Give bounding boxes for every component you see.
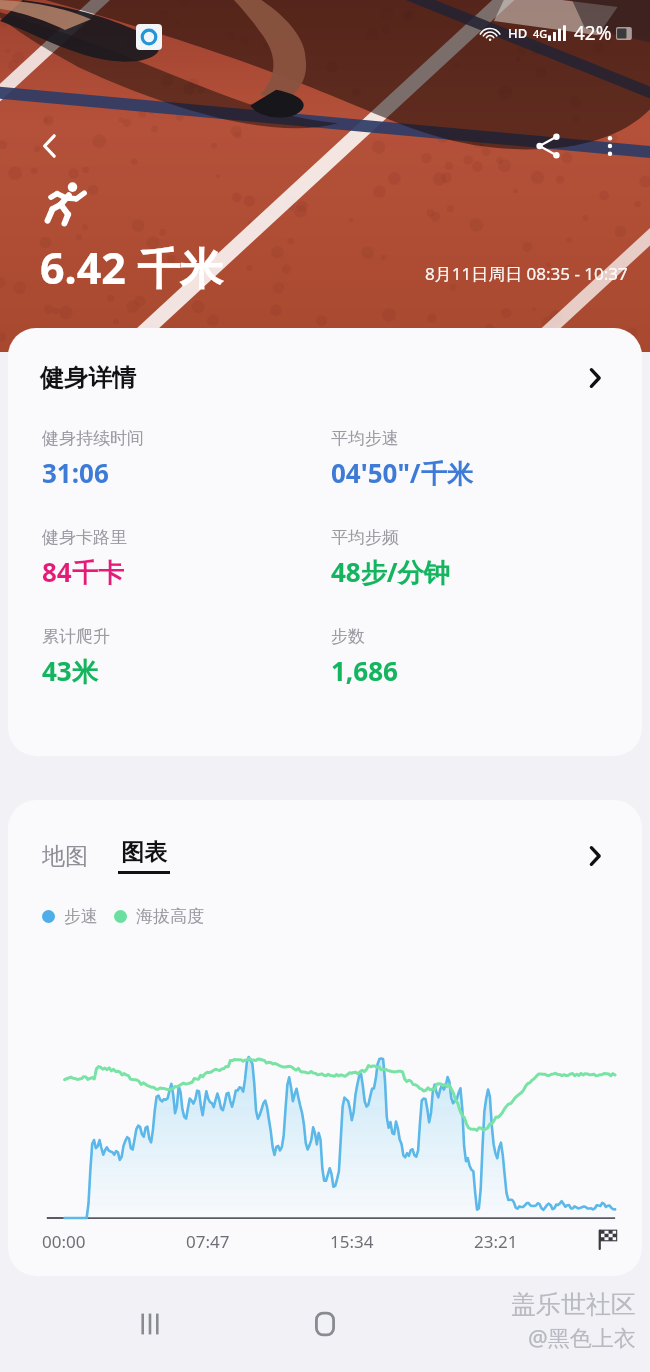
staticText: @黑色上衣 [528, 1322, 636, 1352]
staticText: 地图 [42, 842, 88, 871]
staticText: 健身详情 [40, 363, 578, 393]
button[interactable]: 地图 [38, 842, 92, 871]
staticText: 6.42 千米 [40, 238, 224, 297]
staticText: 步速 [64, 906, 98, 927]
staticText: 48步/分钟 [331, 554, 450, 590]
button[interactable]: More options [582, 118, 638, 174]
staticText: 04'50"/千米 [331, 455, 473, 491]
staticText: 42% [574, 20, 612, 46]
button[interactable]: Recents [118, 1292, 182, 1356]
button[interactable]: Open chart [578, 839, 612, 873]
staticText: 31:06 [42, 455, 109, 490]
staticText: 00:00 [42, 1230, 86, 1253]
staticText: 平均步频 [331, 527, 399, 548]
staticText: 43米 [42, 653, 98, 689]
staticText: 步数 [331, 626, 365, 647]
staticText: 海拔高度 [136, 906, 204, 927]
staticText: 84千卡 [42, 554, 124, 590]
staticText: 07:47 [186, 1230, 230, 1253]
button[interactable]: 健身详情 [8, 328, 642, 428]
staticText: 8月11日周日 08:35 - 10:37 [425, 262, 628, 285]
staticText: 盖乐世社区 [511, 1289, 636, 1320]
button[interactable]: Back [22, 118, 78, 174]
staticText: 累计爬升 [42, 626, 110, 647]
staticText: 1,686 [331, 653, 398, 688]
button[interactable]: 图表 [114, 838, 174, 874]
staticText: 健身卡路里 [42, 527, 127, 548]
staticText: 平均步速 [331, 428, 399, 449]
button[interactable]: Home [293, 1292, 357, 1356]
staticText: 15:34 [330, 1230, 374, 1253]
staticText: 23:21 [474, 1230, 518, 1253]
staticText: 图表 [121, 838, 167, 867]
staticText: 4G [533, 26, 548, 41]
staticText: 健身持续时间 [42, 428, 144, 449]
staticText: HD [508, 24, 528, 42]
button[interactable]: Share [520, 118, 576, 174]
